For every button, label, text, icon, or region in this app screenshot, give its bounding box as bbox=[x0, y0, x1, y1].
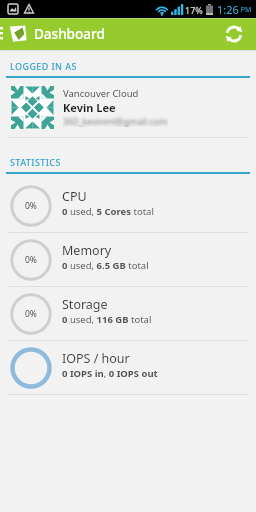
staticText: 0 IOPS in, 0 IOPS out bbox=[62, 367, 158, 380]
staticText: 17% bbox=[185, 4, 203, 16]
staticText: CPU bbox=[62, 188, 87, 205]
staticText: 0 used, 6.5 GB total bbox=[62, 259, 149, 272]
staticText: Kevin Lee bbox=[63, 100, 116, 115]
staticText: PM bbox=[239, 5, 252, 15]
staticText: Storage bbox=[62, 296, 108, 313]
button[interactable]: 0% bbox=[0, 179, 256, 232]
staticText: 360_kevinml@gmail.com bbox=[63, 115, 168, 127]
staticText: Memory bbox=[62, 242, 112, 259]
button[interactable]: Vancouver Cloud bbox=[11, 86, 256, 129]
button[interactable]: 0% bbox=[0, 287, 256, 340]
staticText: 1:26 bbox=[217, 2, 239, 17]
staticText: 0% bbox=[25, 254, 37, 266]
staticText: STATISTICS bbox=[10, 156, 61, 168]
button[interactable]: IOPS / hour bbox=[0, 341, 256, 394]
button[interactable]: 0% bbox=[0, 233, 256, 286]
staticText: 0% bbox=[25, 308, 37, 320]
staticText: 0 used, 5 Cores total bbox=[62, 205, 154, 218]
staticText: Dashboard bbox=[34, 25, 105, 43]
staticText: Vancouver Cloud bbox=[63, 87, 139, 100]
staticText: LOGGED IN AS bbox=[10, 60, 77, 72]
staticText: IOPS / hour bbox=[62, 350, 130, 367]
button[interactable] bbox=[218, 18, 250, 50]
staticText: 0% bbox=[25, 200, 37, 212]
button[interactable] bbox=[9, 25, 27, 43]
staticText: 0 used, 116 GB total bbox=[62, 313, 152, 326]
